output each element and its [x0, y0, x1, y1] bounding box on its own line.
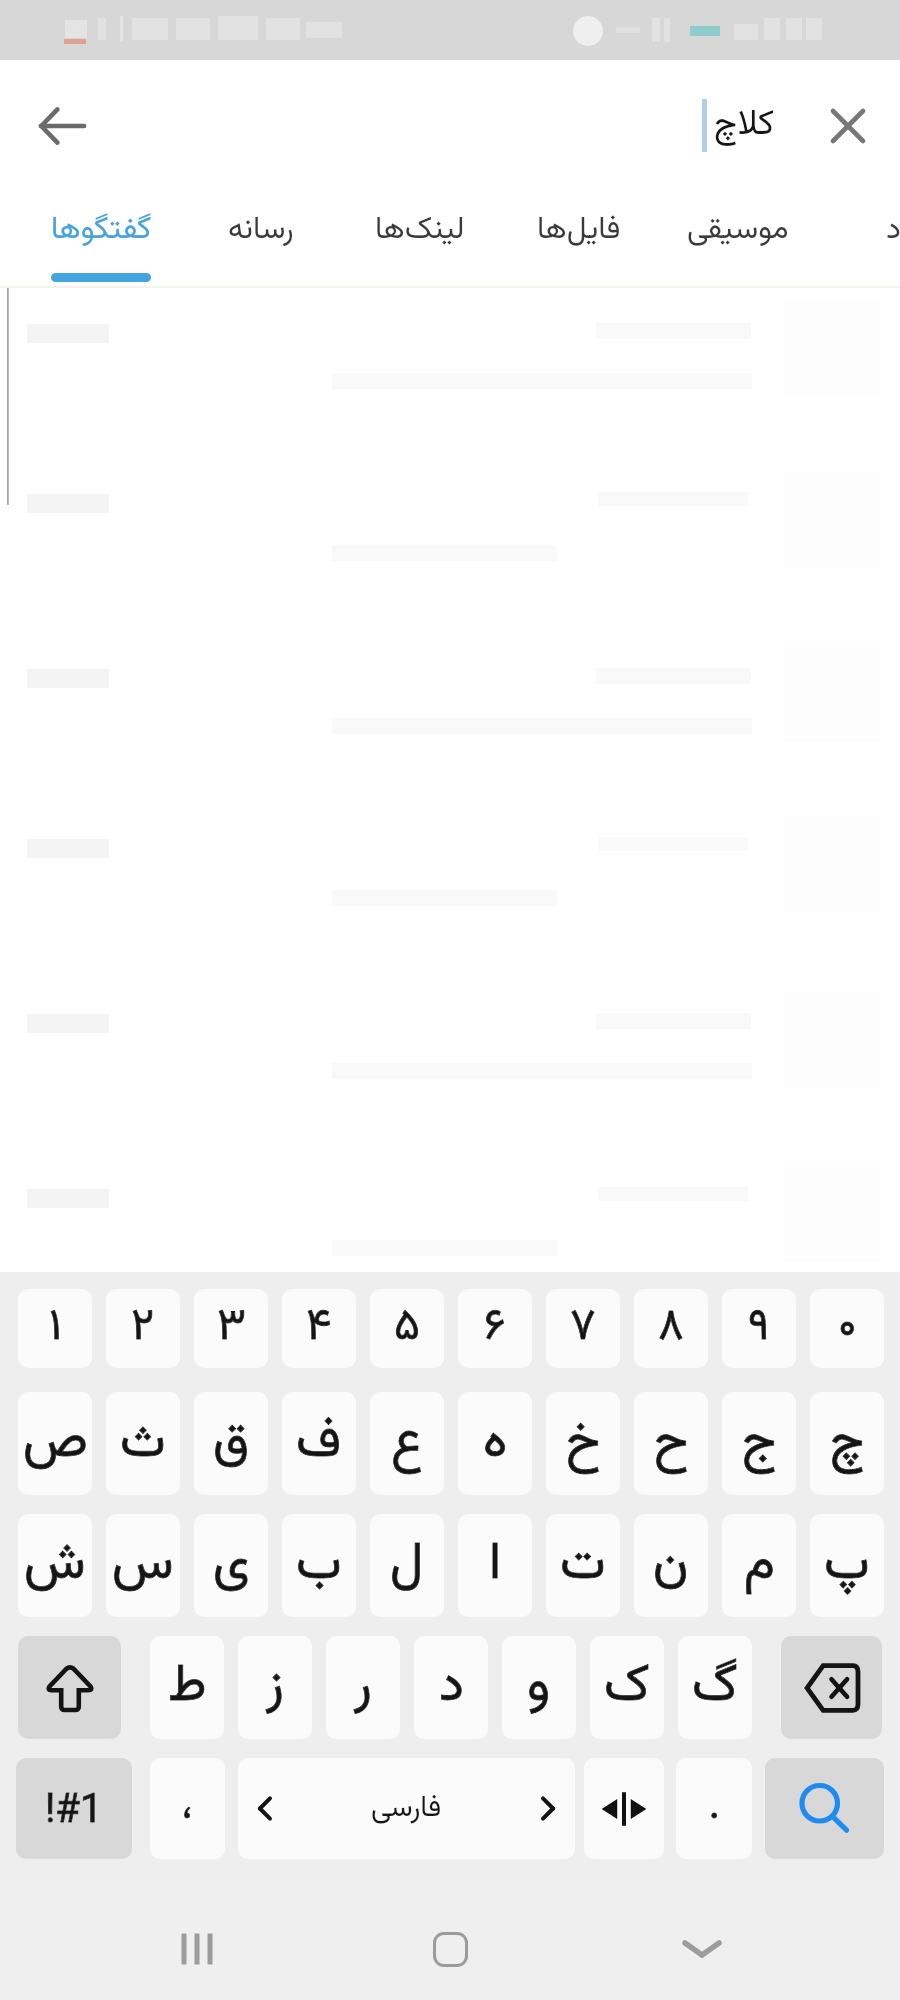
- button[interactable]: ۱: [18, 1289, 92, 1368]
- button[interactable]: ح: [634, 1392, 708, 1495]
- button[interactable]: Backspace: [781, 1636, 882, 1739]
- staticText: ۱: [49, 1294, 62, 1363]
- staticText: گ: [692, 1647, 738, 1728]
- staticText: ۲: [131, 1294, 155, 1363]
- staticText: ۶: [484, 1294, 506, 1363]
- button[interactable]: ر: [326, 1636, 400, 1739]
- button[interactable]: ط: [150, 1636, 224, 1739]
- staticText: ۴: [306, 1294, 332, 1363]
- button[interactable]: Search: [765, 1758, 884, 1859]
- button[interactable]: ش: [18, 1514, 92, 1617]
- staticText: ه: [483, 1403, 508, 1484]
- staticText: ۸: [658, 1294, 684, 1363]
- button[interactable]: گفتگوها: [22, 184, 181, 288]
- button[interactable]: چ: [810, 1392, 884, 1495]
- button[interactable]: فایل‌ها: [499, 184, 658, 288]
- button[interactable]: .: [676, 1758, 752, 1859]
- staticText: ۷: [570, 1294, 596, 1363]
- button[interactable]: ن: [634, 1514, 708, 1617]
- button[interactable]: Recents: [137, 1889, 257, 2000]
- button[interactable]: Shift: [18, 1636, 121, 1739]
- button[interactable]: ب: [282, 1514, 356, 1617]
- button[interactable]: ۵: [370, 1289, 444, 1368]
- staticText: ص: [23, 1403, 88, 1484]
- button[interactable]: Hide keyboard: [642, 1889, 762, 2000]
- button[interactable]: موسیقی: [658, 184, 817, 288]
- button[interactable]: و: [502, 1636, 576, 1739]
- button[interactable]: Move cursor: [584, 1758, 664, 1859]
- button[interactable]: Space: [238, 1758, 575, 1859]
- button[interactable]: ه: [458, 1392, 532, 1495]
- button[interactable]: ۸: [634, 1289, 708, 1368]
- button[interactable]: رسانه: [181, 184, 340, 288]
- button[interactable]: اسناد: [839, 184, 900, 288]
- staticText: ۸: [658, 1294, 684, 1363]
- staticText: ص: [23, 1403, 88, 1484]
- button[interactable]: ۴: [282, 1289, 356, 1368]
- staticText: ق: [213, 1403, 250, 1484]
- staticText: ف: [296, 1403, 342, 1484]
- staticText: ن: [653, 1525, 689, 1606]
- staticText: اسناد: [886, 206, 900, 254]
- staticText: ه: [483, 1403, 508, 1484]
- button[interactable]: گ: [678, 1636, 752, 1739]
- staticText: .: [709, 1779, 720, 1838]
- staticText: ز: [266, 1647, 284, 1728]
- staticText: ۰: [838, 1294, 857, 1363]
- staticText: د: [439, 1647, 464, 1728]
- staticText: و: [527, 1647, 551, 1728]
- button[interactable]: م: [722, 1514, 796, 1617]
- button[interactable]: ۰: [810, 1289, 884, 1368]
- staticText: ت: [560, 1525, 606, 1606]
- button[interactable]: ز: [238, 1636, 312, 1739]
- button[interactable]: ج: [722, 1392, 796, 1495]
- button[interactable]: ت: [546, 1514, 620, 1617]
- staticText: ی: [213, 1525, 250, 1606]
- button[interactable]: ،: [150, 1758, 225, 1859]
- staticText: !#1: [45, 1785, 103, 1832]
- staticText: و: [527, 1647, 551, 1728]
- button[interactable]: ا: [458, 1514, 532, 1617]
- staticText: س: [112, 1525, 174, 1606]
- button[interactable]: ۲: [106, 1289, 180, 1368]
- button[interactable]: Home: [390, 1889, 510, 2000]
- button[interactable]: س: [106, 1514, 180, 1617]
- button[interactable]: ۷: [546, 1289, 620, 1368]
- staticText: ا: [489, 1525, 502, 1606]
- staticText: ج: [742, 1403, 777, 1484]
- button[interactable]: لینک‌ها: [340, 184, 499, 288]
- button[interactable]: ۳: [194, 1289, 268, 1368]
- button[interactable]: ث: [106, 1392, 180, 1495]
- button[interactable]: ص: [18, 1392, 92, 1495]
- button[interactable]: پ: [810, 1514, 884, 1617]
- staticText: .: [709, 1779, 720, 1838]
- staticText: خ: [566, 1403, 601, 1484]
- staticText: ع: [391, 1403, 424, 1484]
- staticText: ۱: [49, 1294, 62, 1363]
- staticText: ،: [182, 1779, 193, 1838]
- staticText: خ: [566, 1403, 601, 1484]
- staticText: ح: [654, 1403, 689, 1484]
- button[interactable]: خ: [546, 1392, 620, 1495]
- staticText: چ: [830, 1403, 865, 1484]
- staticText: ش: [24, 1525, 86, 1606]
- button[interactable]: ۹: [722, 1289, 796, 1368]
- button[interactable]: ک: [590, 1636, 664, 1739]
- staticText: ز: [266, 1647, 284, 1728]
- button[interactable]: Clear search: [800, 78, 896, 174]
- staticText: ۹: [748, 1294, 770, 1363]
- staticText: ش: [24, 1525, 86, 1606]
- button[interactable]: ق: [194, 1392, 268, 1495]
- button[interactable]: د: [414, 1636, 488, 1739]
- staticText: کلاچ: [714, 98, 775, 153]
- button[interactable]: ی: [194, 1514, 268, 1617]
- button[interactable]: ف: [282, 1392, 356, 1495]
- button[interactable]: Back: [14, 78, 110, 174]
- staticText: ج: [742, 1403, 777, 1484]
- staticText: د: [439, 1647, 464, 1728]
- button[interactable]: ل: [370, 1514, 444, 1617]
- button[interactable]: !#1: [16, 1758, 132, 1859]
- button[interactable]: ۶: [458, 1289, 532, 1368]
- staticText: ب: [296, 1525, 342, 1606]
- button[interactable]: ع: [370, 1392, 444, 1495]
